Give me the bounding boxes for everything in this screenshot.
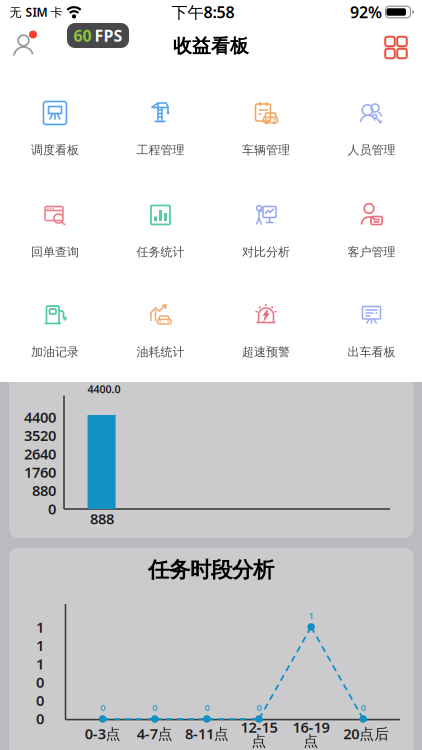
button[interactable]: 用户 — [10, 32, 40, 60]
staticText: 客户管理 — [347, 245, 395, 259]
staticText: 回单查询 — [31, 245, 79, 259]
staticText: 收益看板 — [173, 34, 249, 57]
staticText: 3520 — [24, 426, 56, 445]
staticText: 0 — [36, 709, 44, 728]
staticText: 60 — [73, 25, 91, 46]
staticText: 0 — [152, 701, 157, 714]
staticText: 1 — [36, 654, 44, 673]
button[interactable]: 工程管理 — [108, 82, 213, 182]
button[interactable]: 应用 — [385, 37, 407, 58]
button[interactable]: 回单查询 — [2, 184, 108, 284]
button[interactable]: 调度看板 — [2, 82, 108, 182]
staticText: 2640 — [24, 444, 56, 463]
staticText: 点 — [304, 732, 319, 750]
staticText: 0 — [36, 691, 44, 710]
button[interactable]: 任务统计 — [108, 184, 213, 284]
staticText: 1760 — [24, 462, 56, 482]
staticText: 4400.0 — [87, 382, 120, 396]
staticText: 880 — [32, 481, 56, 500]
staticText: 0 — [48, 499, 56, 518]
staticText: 车辆管理 — [242, 143, 290, 157]
button[interactable]: 超速预警 — [213, 284, 319, 384]
staticText: 调度看板 — [31, 143, 79, 157]
staticText: 出车看板 — [347, 345, 395, 359]
staticText: 4400 — [24, 407, 56, 427]
staticText: 0 — [204, 701, 209, 714]
staticText: 12-15 — [240, 717, 277, 737]
staticText: 加油记录 — [31, 345, 79, 359]
staticText: 任务时段分析 — [148, 557, 274, 583]
staticText: 0 — [36, 672, 44, 692]
staticText: 0 — [256, 701, 261, 714]
button[interactable]: 加油记录 — [2, 284, 108, 384]
staticText: 0 — [361, 701, 366, 714]
staticText: 0-3点 — [85, 724, 121, 743]
staticText: 任务统计 — [136, 245, 184, 259]
staticText: 20点后 — [343, 724, 389, 743]
staticText: 下午8:58 — [171, 1, 234, 23]
staticText: 92% — [350, 1, 382, 23]
staticText: 8-11点 — [185, 724, 229, 743]
staticText: 0 — [100, 701, 105, 714]
staticText: 1 — [309, 609, 314, 622]
staticText: FPS — [94, 25, 122, 46]
button[interactable]: 对比分析 — [213, 184, 319, 284]
staticText: 1 — [36, 636, 44, 655]
staticText: 工程管理 — [136, 143, 184, 157]
staticText: 1 — [36, 617, 44, 637]
staticText: 888 — [90, 509, 114, 528]
staticText: 超速预警 — [242, 345, 290, 359]
staticText: 油耗统计 — [136, 345, 184, 359]
button[interactable]: 出车看板 — [319, 284, 422, 384]
staticText: 人员管理 — [347, 143, 395, 157]
staticText: 对比分析 — [242, 245, 290, 259]
button[interactable]: 人员管理 — [319, 82, 422, 182]
staticText: 16-19 — [293, 717, 330, 737]
staticText: 4-7点 — [137, 724, 173, 743]
staticText: 无 SIM 卡 — [9, 4, 62, 20]
staticText: 点 — [251, 732, 266, 750]
button[interactable]: 客户管理 — [319, 184, 422, 284]
button[interactable]: 车辆管理 — [213, 82, 319, 182]
button[interactable]: 油耗统计 — [108, 284, 213, 384]
